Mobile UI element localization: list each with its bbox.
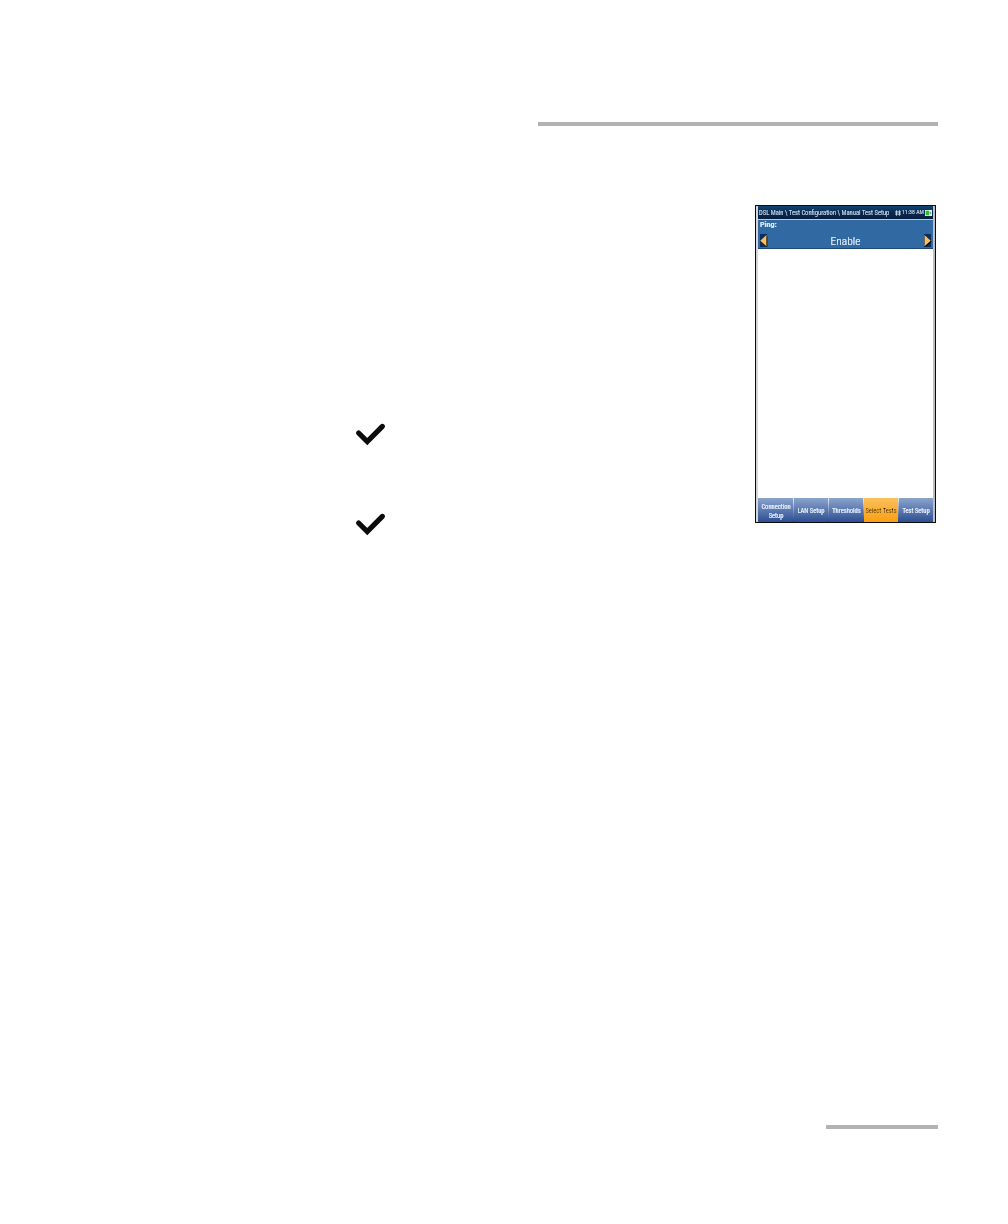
button[interactable]: Next value xyxy=(924,234,931,247)
button[interactable]: Thresholds xyxy=(829,498,863,522)
button[interactable]: Previous value xyxy=(760,234,767,247)
button[interactable]: LAN Setup xyxy=(794,498,828,522)
staticText: Enable xyxy=(767,234,924,247)
button[interactable]: Select Tests xyxy=(864,498,898,522)
button[interactable]: Test Setup xyxy=(899,498,933,522)
staticText: Connection Setup xyxy=(761,503,791,519)
staticText: Ping: xyxy=(760,220,777,229)
button[interactable]: DSL Main \ Test Configuration \ Manual T… xyxy=(758,206,933,219)
staticText: Test Setup xyxy=(902,507,930,515)
staticText: Thresholds xyxy=(832,507,861,515)
staticText: Select Tests xyxy=(865,507,897,515)
staticText: 11:38 AM xyxy=(902,209,924,216)
button[interactable]: Connection Setup xyxy=(758,498,793,522)
other: Battery xyxy=(925,210,932,216)
staticText: DSL Main \ Test Configuration \ Manual T… xyxy=(759,209,890,217)
staticText: LAN Setup xyxy=(797,507,825,515)
other: Network xyxy=(895,210,901,216)
